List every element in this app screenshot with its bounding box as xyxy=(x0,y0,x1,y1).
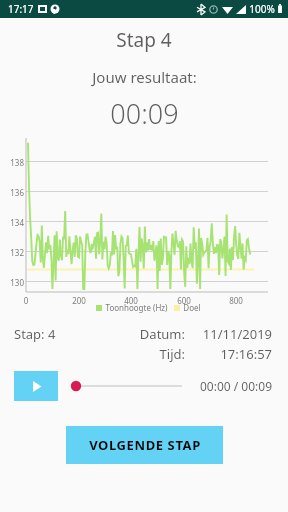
staticText: VOLGENDE STAP xyxy=(89,436,201,454)
button[interactable]: Play xyxy=(14,371,58,401)
staticText: 00:09 xyxy=(110,95,179,132)
staticText: 134 xyxy=(6,217,24,228)
staticText: 600 xyxy=(175,295,193,306)
staticText: Stap: 4 xyxy=(14,325,56,343)
staticText: 800 xyxy=(227,295,245,306)
staticText: Jouw resultaat: xyxy=(92,67,197,87)
staticText: 130 xyxy=(6,277,24,288)
staticText: 11/11/2019 xyxy=(192,325,272,343)
staticText: Doel xyxy=(183,302,201,313)
staticText: 138 xyxy=(6,157,24,168)
staticText: Tijd: xyxy=(120,345,185,363)
staticText: 0 xyxy=(17,295,35,306)
staticText: 400 xyxy=(122,295,140,306)
button[interactable]: VOLGENDE STAP xyxy=(66,426,223,464)
staticText: 00:00 / 00:09 xyxy=(199,378,272,394)
staticText: 132 xyxy=(6,247,24,258)
staticText: Datum: xyxy=(120,325,185,343)
staticText: Stap 4 xyxy=(116,27,172,53)
staticText: 200 xyxy=(70,295,88,306)
staticText: 17:17 xyxy=(8,2,34,16)
button[interactable]: Seek xyxy=(66,372,186,400)
staticText: 17:16:57 xyxy=(192,345,272,363)
staticText: 100% xyxy=(249,2,275,16)
staticText: 136 xyxy=(6,187,24,198)
staticText: Toonhoogte (Hz) xyxy=(105,302,168,313)
